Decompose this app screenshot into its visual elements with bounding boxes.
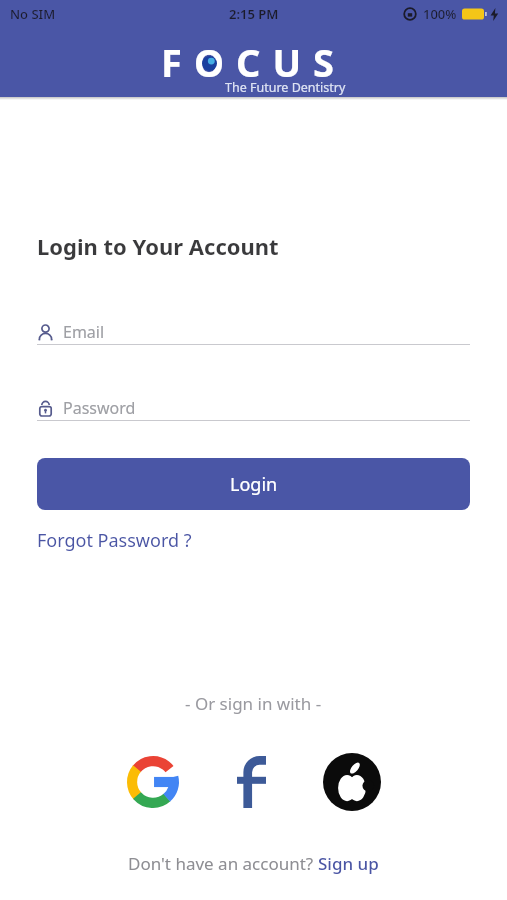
button[interactable] (127, 756, 179, 808)
button[interactable] (225, 756, 277, 808)
button[interactable]: Email (37, 321, 470, 345)
button[interactable]: Forgot Password ? (37, 528, 192, 553)
button[interactable]: Password (37, 397, 470, 421)
staticText: Sign up (318, 852, 379, 875)
staticText: O (194, 36, 225, 88)
button[interactable]: Don't have an account? (128, 852, 379, 875)
staticText: 100% (423, 5, 457, 23)
staticText: No SIM (10, 5, 56, 23)
staticText: The Future Dentistry (225, 79, 346, 96)
staticText: Login to Your Account (37, 231, 279, 261)
staticText: F (161, 36, 194, 88)
staticText: CUS (236, 36, 347, 88)
button[interactable]: Login (37, 458, 470, 510)
button[interactable] (323, 753, 381, 811)
staticText: Password (63, 397, 136, 419)
staticText: Email (63, 321, 105, 343)
staticText: Don't have an account? (128, 852, 318, 875)
staticText: Login (230, 472, 278, 497)
staticText: - Or sign in with - (185, 692, 322, 715)
staticText: 2:15 PM (229, 5, 279, 23)
